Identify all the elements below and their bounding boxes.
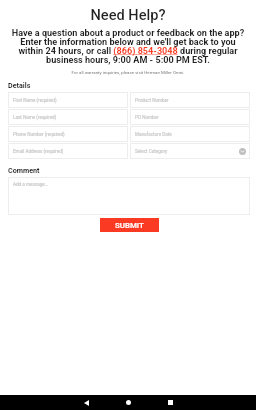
staticText: Have a question about a product or feedb… — [10, 28, 246, 66]
staticText: Add a message... — [13, 182, 49, 187]
staticText: Product Number — [135, 98, 169, 103]
button[interactable]: Add a message... — [8, 177, 250, 215]
staticText: First Name (required) — [13, 98, 57, 103]
staticText: Phone Number (required) — [13, 132, 65, 137]
button[interactable]: Manufacture Date — [130, 126, 250, 142]
staticText: Select Category — [135, 149, 168, 154]
button[interactable]: Email Address (required) — [8, 143, 128, 159]
button[interactable]: Last Name (required) — [8, 109, 128, 125]
staticText: Need Help? — [0, 6, 256, 23]
button[interactable]: Recent apps — [149, 395, 191, 410]
button[interactable]: First Name (required) — [8, 92, 128, 108]
staticText: PO Number — [135, 115, 159, 120]
staticText: Last Name (required) — [13, 115, 57, 120]
staticText: Manufacture Date — [135, 132, 172, 137]
other: Open category list — [239, 148, 246, 155]
button[interactable]: Select Category — [130, 143, 250, 159]
staticText: For all warranty inquiries, please visit… — [0, 70, 256, 75]
button[interactable]: Back — [65, 395, 107, 410]
staticText: Comment — [8, 166, 40, 174]
button[interactable]: SUBMIT — [100, 218, 159, 232]
staticText: SUBMIT — [115, 221, 144, 230]
button[interactable]: Product Number — [130, 92, 250, 108]
button[interactable]: PO Number — [130, 109, 250, 125]
staticText: Email Address (required) — [13, 149, 64, 154]
staticText: Details — [8, 81, 31, 89]
button[interactable]: Phone Number (required) — [8, 126, 128, 142]
button[interactable]: Home — [107, 395, 149, 410]
